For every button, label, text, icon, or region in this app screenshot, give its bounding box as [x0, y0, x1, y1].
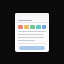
button[interactable] — [42, 25, 46, 29]
button[interactable]: Confirm — [19, 46, 45, 50]
button[interactable]: Confirm — [15, 13, 49, 52]
button[interactable] — [24, 25, 29, 29]
button[interactable] — [36, 25, 41, 29]
button[interactable] — [18, 25, 23, 29]
button[interactable] — [30, 25, 35, 29]
